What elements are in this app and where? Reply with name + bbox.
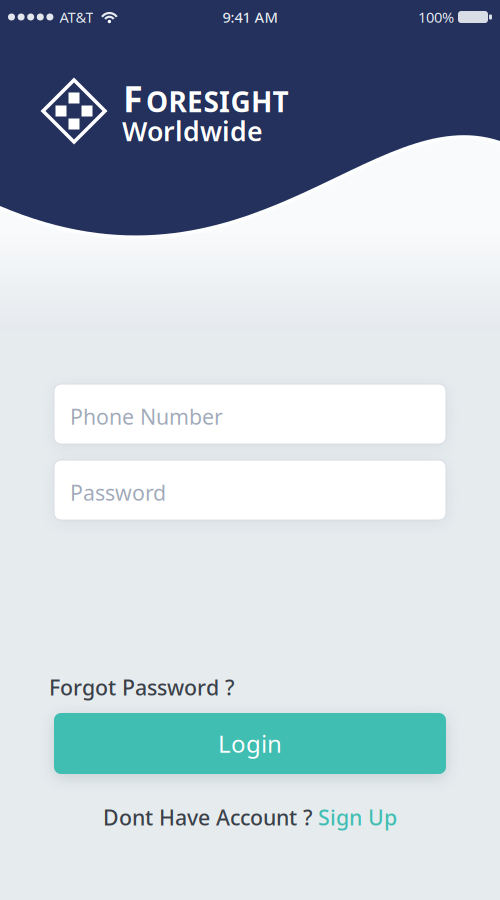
staticText: Password	[70, 478, 166, 507]
button[interactable]: Phone Number	[54, 384, 446, 444]
staticText: Phone Number	[70, 402, 223, 431]
staticText: AT&T	[59, 7, 93, 27]
staticText: Login	[218, 728, 282, 759]
staticText: Forgot Password ?	[49, 673, 235, 701]
button[interactable]: Login	[54, 713, 446, 774]
button[interactable]: Password	[54, 460, 446, 520]
staticText: 9:41 AM	[222, 7, 277, 27]
staticText: ORESIGHT	[146, 83, 288, 120]
button[interactable]: Sign Up	[318, 803, 397, 831]
staticText: Dont Have Account ?	[103, 803, 313, 831]
button[interactable]: Forgot Password ?	[49, 673, 235, 701]
staticText: 100%	[418, 7, 454, 27]
staticText: Sign Up	[318, 803, 397, 831]
staticText: Worldwide	[122, 113, 263, 149]
staticText: F	[123, 74, 143, 122]
